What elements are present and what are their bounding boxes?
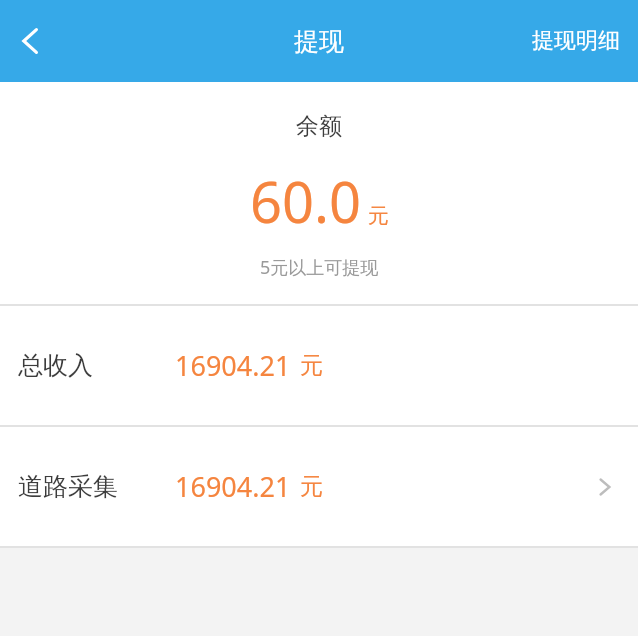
staticText: 16904.21 (175, 468, 291, 505)
staticText: 60.0 (250, 163, 362, 239)
button[interactable]: 道路采集 (0, 427, 638, 546)
button[interactable]: 提现明细 (514, 13, 638, 69)
staticText: 5元以上可提现 (260, 255, 379, 280)
staticText: 总收入 (18, 350, 93, 381)
staticText: 提现 (294, 26, 344, 57)
button[interactable]: Back (0, 10, 62, 72)
staticText: 余额 (296, 112, 342, 141)
staticText: 提现明细 (532, 27, 620, 55)
staticText: 元 (300, 472, 323, 501)
staticText: 元 (368, 203, 389, 229)
staticText: 道路采集 (18, 471, 118, 502)
button[interactable]: 总收入 (0, 306, 638, 425)
staticText: 元 (300, 351, 323, 380)
staticText: 16904.21 (175, 347, 291, 384)
